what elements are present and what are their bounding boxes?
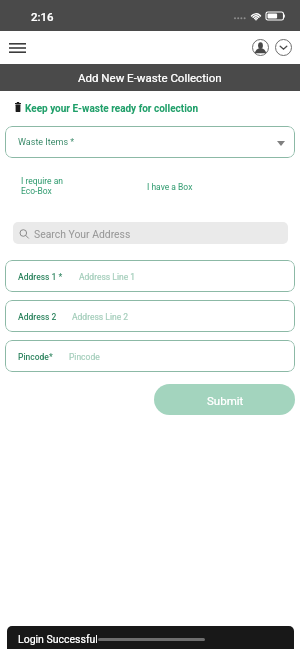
button[interactable]: I require an Eco-Box	[21, 176, 64, 196]
button[interactable]: Address 1 *	[5, 260, 295, 292]
button[interactable]: Pincode*	[5, 340, 295, 372]
staticText: I have a Box	[147, 182, 193, 192]
staticText: Submit	[207, 394, 244, 407]
button[interactable]: Expand	[274, 38, 293, 57]
staticText: Add New E-waste Collection	[78, 71, 222, 84]
staticText: Address Line 2	[72, 312, 129, 322]
button[interactable]: Search Your Address	[13, 222, 288, 244]
staticText: Address 1 *	[18, 272, 63, 282]
staticText: I require an Eco-Box	[21, 176, 64, 196]
staticText: Pincode	[69, 352, 100, 362]
staticText: Address 2	[18, 312, 57, 322]
button[interactable]: Submit	[154, 384, 295, 415]
staticText: Login Successful	[18, 633, 98, 645]
staticText: 2:16	[31, 10, 54, 23]
button[interactable]: I have a Box	[147, 182, 193, 192]
staticText: Waste Items *	[18, 137, 75, 148]
button[interactable]: Menu	[2, 33, 32, 63]
button[interactable]: Waste Items *	[5, 126, 295, 158]
staticText: Pincode*	[18, 352, 53, 362]
button[interactable]: Address 2	[5, 300, 295, 332]
staticText: Keep your E-waste ready for collection	[25, 103, 199, 115]
button[interactable]: Profile	[251, 38, 270, 57]
staticText: Address Line 1	[79, 272, 136, 282]
staticText: Search Your Address	[34, 228, 131, 240]
